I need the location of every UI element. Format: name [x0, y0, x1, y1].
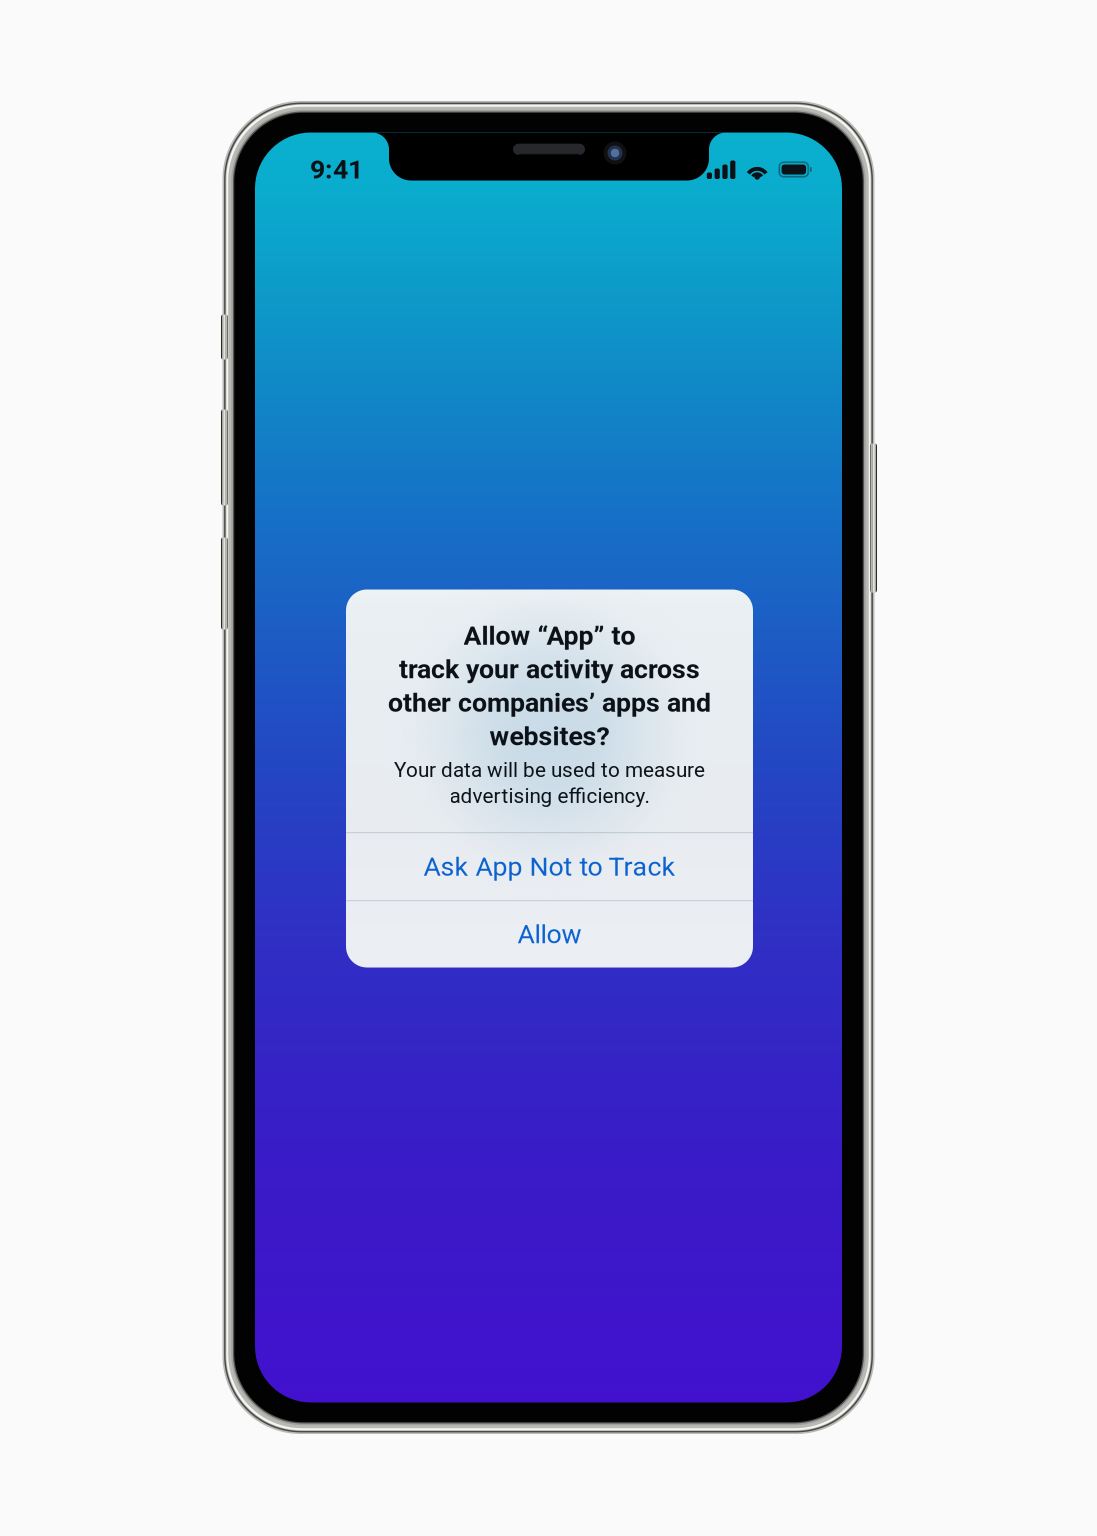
button[interactable]: Ask App Not to Track — [346, 833, 753, 900]
staticText: Allow — [517, 918, 581, 950]
staticText: Allow “App” to — [463, 620, 635, 651]
button[interactable]: Allow — [346, 901, 753, 967]
staticText: other companies’ apps and — [388, 687, 711, 718]
staticText: 9:41 — [310, 154, 363, 185]
staticText: Ask App Not to Track — [423, 851, 675, 882]
staticText: Your data will be used to measure — [394, 758, 705, 782]
staticText: track your activity across — [399, 654, 700, 685]
staticText: advertising efficiency. — [449, 784, 649, 808]
staticText: websites? — [489, 721, 609, 752]
